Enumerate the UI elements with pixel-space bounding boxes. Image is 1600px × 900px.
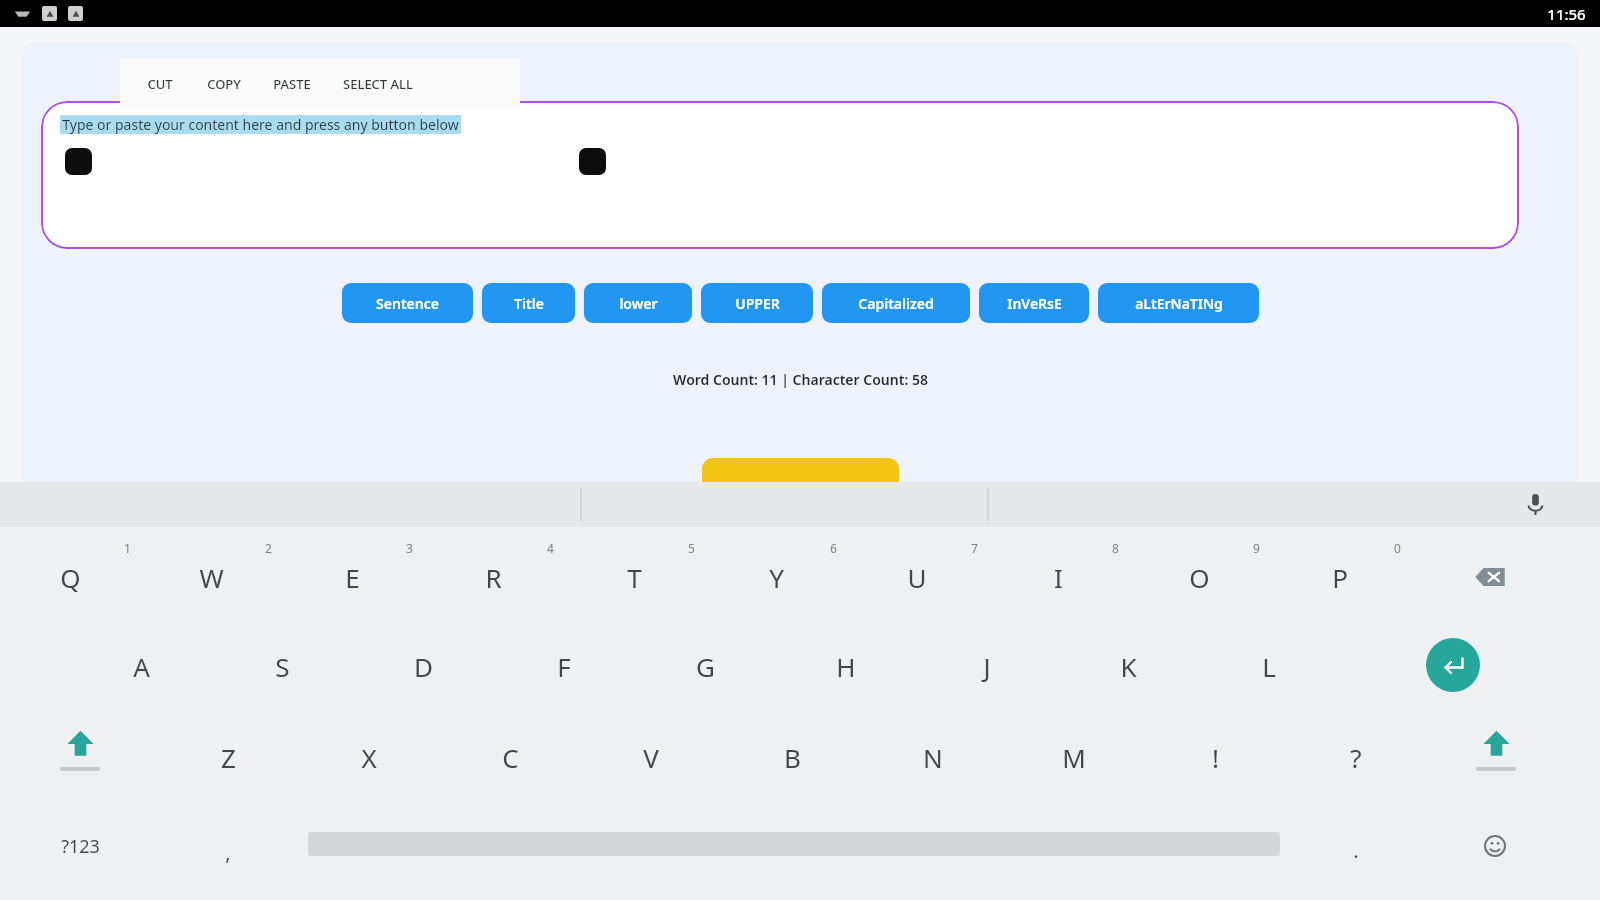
staticText: H bbox=[836, 649, 856, 684]
button[interactable]: P bbox=[1305, 545, 1375, 609]
button[interactable]: PASTE bbox=[268, 66, 316, 102]
staticText: Title bbox=[514, 294, 544, 313]
button[interactable]: Y bbox=[741, 545, 811, 609]
button[interactable]: B bbox=[757, 725, 827, 789]
staticText: E bbox=[345, 560, 360, 595]
staticText: 8 bbox=[1112, 540, 1119, 556]
button[interactable]: M bbox=[1039, 725, 1109, 789]
button[interactable]: ?123 bbox=[35, 826, 125, 866]
button[interactable]: Title bbox=[482, 283, 575, 323]
staticText: 7 bbox=[971, 540, 978, 556]
button[interactable]: X bbox=[334, 725, 404, 789]
staticText: . bbox=[1353, 837, 1359, 864]
button[interactable]: SELECT ALL bbox=[338, 66, 418, 102]
staticText: V bbox=[643, 740, 659, 775]
button[interactable]: Z bbox=[193, 725, 263, 789]
staticText: S bbox=[275, 649, 290, 684]
staticText: A bbox=[133, 649, 150, 684]
button[interactable]: I bbox=[1023, 545, 1093, 609]
staticText: UPPER bbox=[735, 294, 780, 313]
button[interactable]: , bbox=[193, 820, 263, 884]
button[interactable]: aLtErNaTINg bbox=[1098, 283, 1259, 323]
button[interactable]: D bbox=[388, 634, 458, 698]
button[interactable]: COPY bbox=[202, 66, 246, 102]
button[interactable]: Q bbox=[35, 545, 105, 609]
button[interactable]: S bbox=[247, 634, 317, 698]
button[interactable]: O bbox=[1164, 545, 1234, 609]
button[interactable]: T bbox=[599, 545, 669, 609]
button[interactable]: Emoji bbox=[1475, 826, 1515, 866]
button[interactable]: Voice input bbox=[1519, 488, 1552, 521]
staticText: G bbox=[696, 649, 715, 684]
staticText: Type or paste your content here and pres… bbox=[62, 115, 459, 134]
button[interactable] bbox=[702, 458, 899, 483]
staticText: P bbox=[1332, 560, 1348, 595]
staticText: ? bbox=[1350, 740, 1362, 775]
staticText: K bbox=[1120, 649, 1137, 684]
staticText: aLtErNaTINg bbox=[1135, 294, 1223, 313]
staticText: 9 bbox=[1253, 540, 1260, 556]
button[interactable]: Shift bbox=[47, 729, 113, 803]
button[interactable]: F bbox=[529, 634, 599, 698]
button[interactable]: L bbox=[1234, 634, 1304, 698]
button[interactable]: K bbox=[1093, 634, 1163, 698]
button[interactable]: Enter bbox=[1426, 638, 1480, 692]
button[interactable]: G bbox=[670, 634, 740, 698]
staticText: InVeRsE bbox=[1007, 294, 1062, 313]
staticText: N bbox=[923, 740, 943, 775]
button[interactable]: ! bbox=[1180, 725, 1250, 789]
button[interactable]: UPPER bbox=[701, 283, 813, 323]
staticText: , bbox=[225, 839, 231, 866]
staticText: 6 bbox=[830, 540, 837, 556]
button[interactable]: CUT bbox=[142, 66, 178, 102]
staticText: O bbox=[1189, 560, 1210, 595]
staticText: ! bbox=[1212, 740, 1219, 775]
button[interactable]: W bbox=[176, 545, 246, 609]
button[interactable]: N bbox=[898, 725, 968, 789]
staticText: SELECT ALL bbox=[343, 75, 413, 93]
button[interactable]: . bbox=[1321, 818, 1391, 882]
staticText: I bbox=[1054, 560, 1063, 595]
staticText: CUT bbox=[147, 75, 173, 93]
staticText: 11:56 bbox=[1547, 4, 1586, 24]
staticText: L bbox=[1262, 649, 1276, 684]
staticText: 3 bbox=[406, 540, 413, 556]
staticText: lower bbox=[619, 294, 658, 313]
button[interactable]: U bbox=[882, 545, 952, 609]
staticText: Q bbox=[60, 560, 81, 595]
staticText: ?123 bbox=[61, 834, 100, 859]
staticText: PASTE bbox=[273, 75, 311, 93]
button[interactable]: Sentence bbox=[342, 283, 473, 323]
button[interactable]: Type or paste your content here and pres… bbox=[41, 101, 1519, 249]
button[interactable]: H bbox=[811, 634, 881, 698]
staticText: M bbox=[1062, 740, 1086, 775]
staticText: T bbox=[627, 560, 642, 595]
staticText: W bbox=[199, 560, 224, 595]
staticText: 1 bbox=[124, 540, 131, 556]
button[interactable]: lower bbox=[584, 283, 692, 323]
staticText: 2 bbox=[265, 540, 272, 556]
button[interactable]: ? bbox=[1321, 725, 1391, 789]
button[interactable]: E bbox=[317, 545, 387, 609]
button[interactable]: Shift bbox=[1463, 729, 1529, 803]
button[interactable]: V bbox=[616, 725, 686, 789]
button[interactable]: Capitalized bbox=[822, 283, 970, 323]
staticText: U bbox=[907, 560, 927, 595]
staticText: Z bbox=[221, 740, 236, 775]
staticText: Y bbox=[769, 560, 784, 595]
staticText: X bbox=[361, 740, 377, 775]
staticText: F bbox=[557, 649, 571, 684]
staticText: 5 bbox=[688, 540, 695, 556]
button[interactable]: Backspace bbox=[1455, 545, 1525, 609]
staticText: 4 bbox=[547, 540, 554, 556]
button[interactable]: InVeRsE bbox=[979, 283, 1089, 323]
button[interactable]: R bbox=[458, 545, 528, 609]
button[interactable]: C bbox=[475, 725, 545, 789]
button[interactable]: A bbox=[106, 634, 176, 698]
staticText: D bbox=[414, 649, 433, 684]
button[interactable]: J bbox=[952, 634, 1022, 698]
staticText: C bbox=[502, 740, 519, 775]
staticText: Word Count: 11 | Character Count: 58 bbox=[673, 370, 928, 389]
staticText: R bbox=[485, 560, 502, 595]
